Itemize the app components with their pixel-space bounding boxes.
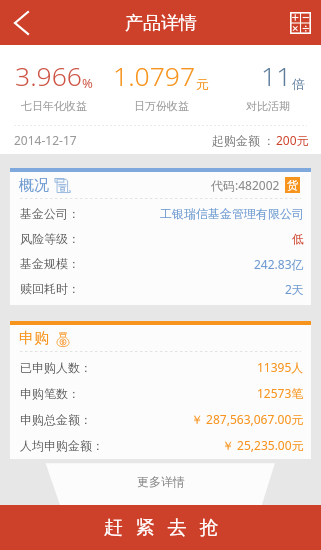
button[interactable]: Back — [0, 0, 42, 45]
staticText: 基金规模： — [20, 256, 80, 271]
staticText: 申购笔数： — [20, 386, 80, 401]
staticText: 2014-12-17 — [14, 132, 77, 148]
staticText: 赶紧去抢 — [97, 516, 225, 540]
staticText: 风险等级： — [20, 231, 80, 246]
staticText: 赎回耗时： — [20, 281, 80, 296]
staticText: 代码:482002 — [211, 177, 280, 193]
button[interactable]: 赶紧去抢 — [0, 505, 321, 550]
staticText: 七日年化收益 — [21, 99, 87, 113]
staticText: 200元 — [276, 132, 309, 148]
staticText: 工银瑞信基金管理有限公司 — [160, 206, 304, 221]
staticText: 242.83亿 — [254, 256, 304, 272]
staticText: 货 — [287, 178, 298, 192]
staticText: 更多详情 — [137, 474, 185, 489]
staticText: ￥ 287,563,067.00元 — [191, 411, 304, 427]
staticText: 人均申购金额： — [20, 438, 104, 453]
staticText: 申购总金额： — [20, 412, 92, 427]
staticText: 2天 — [285, 281, 304, 297]
staticText: 倍 — [292, 76, 305, 92]
staticText: 11395人 — [257, 359, 304, 375]
staticText: 3.966 — [15, 58, 82, 94]
button[interactable]: 更多详情 — [0, 459, 321, 505]
staticText: 基金公司： — [20, 206, 80, 221]
staticText: 低 — [292, 231, 304, 246]
staticText: 日万份收益 — [134, 99, 189, 113]
staticText: 1.0797 — [113, 58, 196, 94]
staticText: 产品详情 — [125, 12, 197, 35]
staticText: 已申购人数： — [20, 360, 92, 375]
staticText: % — [82, 74, 93, 92]
staticText: 申购 — [19, 329, 49, 348]
staticText: 元 — [196, 76, 209, 92]
staticText: ￥ 25,235.00元 — [222, 437, 304, 453]
staticText: 11 — [261, 58, 292, 94]
staticText: 12573笔 — [257, 385, 304, 401]
staticText: 起购金额 ： — [212, 132, 276, 148]
staticText: 对比活期 — [246, 99, 290, 113]
button[interactable]: Calculator — [279, 0, 321, 45]
staticText: 概况 — [19, 176, 49, 195]
